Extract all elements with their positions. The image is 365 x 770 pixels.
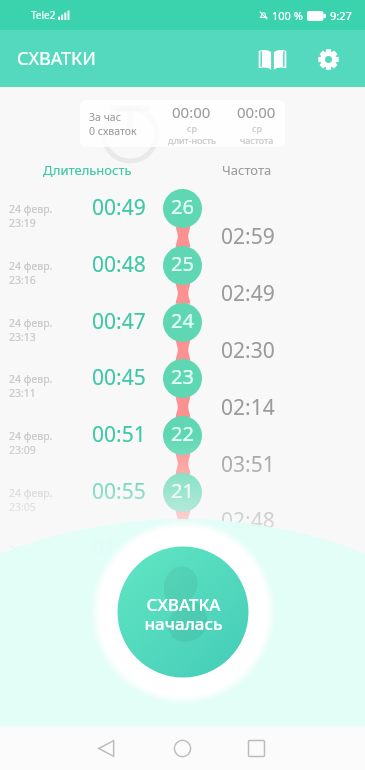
staticText: СХВАТКИ <box>17 46 96 71</box>
staticText: 0 схваток <box>89 124 137 138</box>
button[interactable]: 20 <box>163 530 202 569</box>
staticText: ср <box>252 122 262 134</box>
staticText: 22 <box>171 420 194 447</box>
staticText: 02:49 <box>221 279 275 308</box>
staticText: ср <box>187 122 197 134</box>
staticText: 00:51 <box>92 420 146 449</box>
staticText: 23:13 <box>9 330 36 344</box>
button[interactable]: За час <box>80 100 285 147</box>
staticText: длит-ность <box>168 134 216 146</box>
staticText: За час <box>89 110 121 124</box>
staticText: частота <box>240 134 274 146</box>
button[interactable]: 21 <box>163 473 202 512</box>
staticText: Частота <box>222 161 272 179</box>
staticText: 24 февр. <box>9 259 53 273</box>
button[interactable]: 23 <box>163 359 202 398</box>
staticText: 03:51 <box>221 450 275 479</box>
button[interactable]: СХВАТКА началась <box>118 547 248 677</box>
button[interactable]: 25 <box>163 246 202 285</box>
staticText: 02:59 <box>221 222 275 251</box>
staticText: 23:11 <box>9 386 36 400</box>
staticText: 23:05 <box>9 500 36 514</box>
staticText: 25 <box>171 250 194 277</box>
button[interactable]: 22 <box>163 416 202 455</box>
staticText: 24 февр. <box>9 372 53 386</box>
staticText: 21 <box>171 477 194 504</box>
staticText: 26 <box>171 193 194 220</box>
staticText: Длительность <box>43 161 132 179</box>
staticText: 00:00 <box>172 102 211 122</box>
staticText: 19 <box>171 591 194 618</box>
staticText: 100 % <box>272 8 303 23</box>
staticText: 20 <box>171 534 194 561</box>
staticText: 00:45 <box>92 363 146 392</box>
staticText: 9:27 <box>330 8 352 23</box>
button[interactable]: Назад <box>84 726 129 770</box>
button[interactable]: 24 <box>163 303 202 342</box>
staticText: 01:02 <box>92 534 146 563</box>
staticText: 24 <box>171 307 194 334</box>
staticText: 00:48 <box>92 250 146 279</box>
staticText: 23:19 <box>9 216 36 230</box>
staticText: 24 февр. <box>9 486 53 500</box>
staticText: Tele2 <box>31 8 56 22</box>
button[interactable]: Настройки <box>304 35 352 83</box>
staticText: 24 февр. <box>9 202 53 216</box>
staticText: 00:00 <box>237 102 276 122</box>
button[interactable]: Домой <box>160 726 205 770</box>
staticText: 23 <box>171 363 194 390</box>
staticText: 02:30 <box>221 336 275 365</box>
button[interactable]: 26 <box>163 189 202 228</box>
staticText: 00:55 <box>92 477 146 506</box>
staticText: 24 февр. <box>9 316 53 330</box>
staticText: СХВАТКА началась <box>144 593 223 635</box>
staticText: 23:16 <box>9 273 36 287</box>
staticText: 00:58 <box>92 591 146 620</box>
staticText: 24 февр. <box>9 429 53 443</box>
staticText: 23:09 <box>9 443 36 457</box>
staticText: 24 февр. <box>9 543 53 557</box>
button[interactable]: Недавние <box>234 726 279 770</box>
button[interactable]: Руководство <box>248 35 296 83</box>
button[interactable]: 19 <box>163 587 202 626</box>
staticText: 02:48 <box>221 506 275 535</box>
staticText: 02:14 <box>221 393 275 422</box>
staticText: 00:49 <box>92 193 146 222</box>
staticText: 02:33 <box>221 563 275 592</box>
staticText: 00:47 <box>92 307 146 336</box>
